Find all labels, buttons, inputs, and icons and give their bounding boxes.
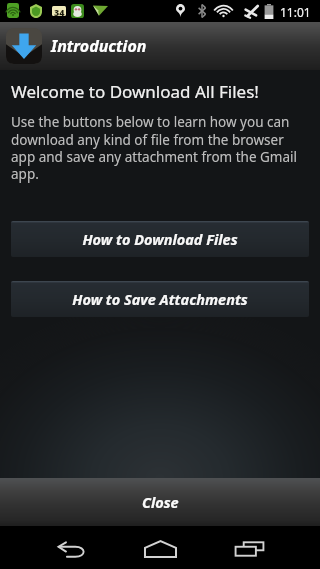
staticText: Use the buttons below to learn how you c…	[11, 113, 308, 183]
button[interactable]: Back	[27, 526, 116, 569]
staticText: 34	[54, 6, 65, 16]
staticText: Close	[142, 492, 179, 512]
staticText: Welcome to Download All Files!	[11, 80, 259, 103]
button[interactable]: Home	[116, 526, 205, 569]
staticText: How to Save Attachments	[72, 289, 248, 309]
staticText: How to Download Files	[82, 229, 238, 249]
staticText: Introduction	[51, 35, 147, 57]
button[interactable]: Close	[0, 478, 320, 526]
button[interactable]: Recent apps	[205, 526, 294, 569]
button[interactable]: How to Download Files	[11, 221, 309, 257]
staticText: 11:01	[280, 4, 311, 20]
button[interactable]: How to Save Attachments	[11, 281, 309, 317]
